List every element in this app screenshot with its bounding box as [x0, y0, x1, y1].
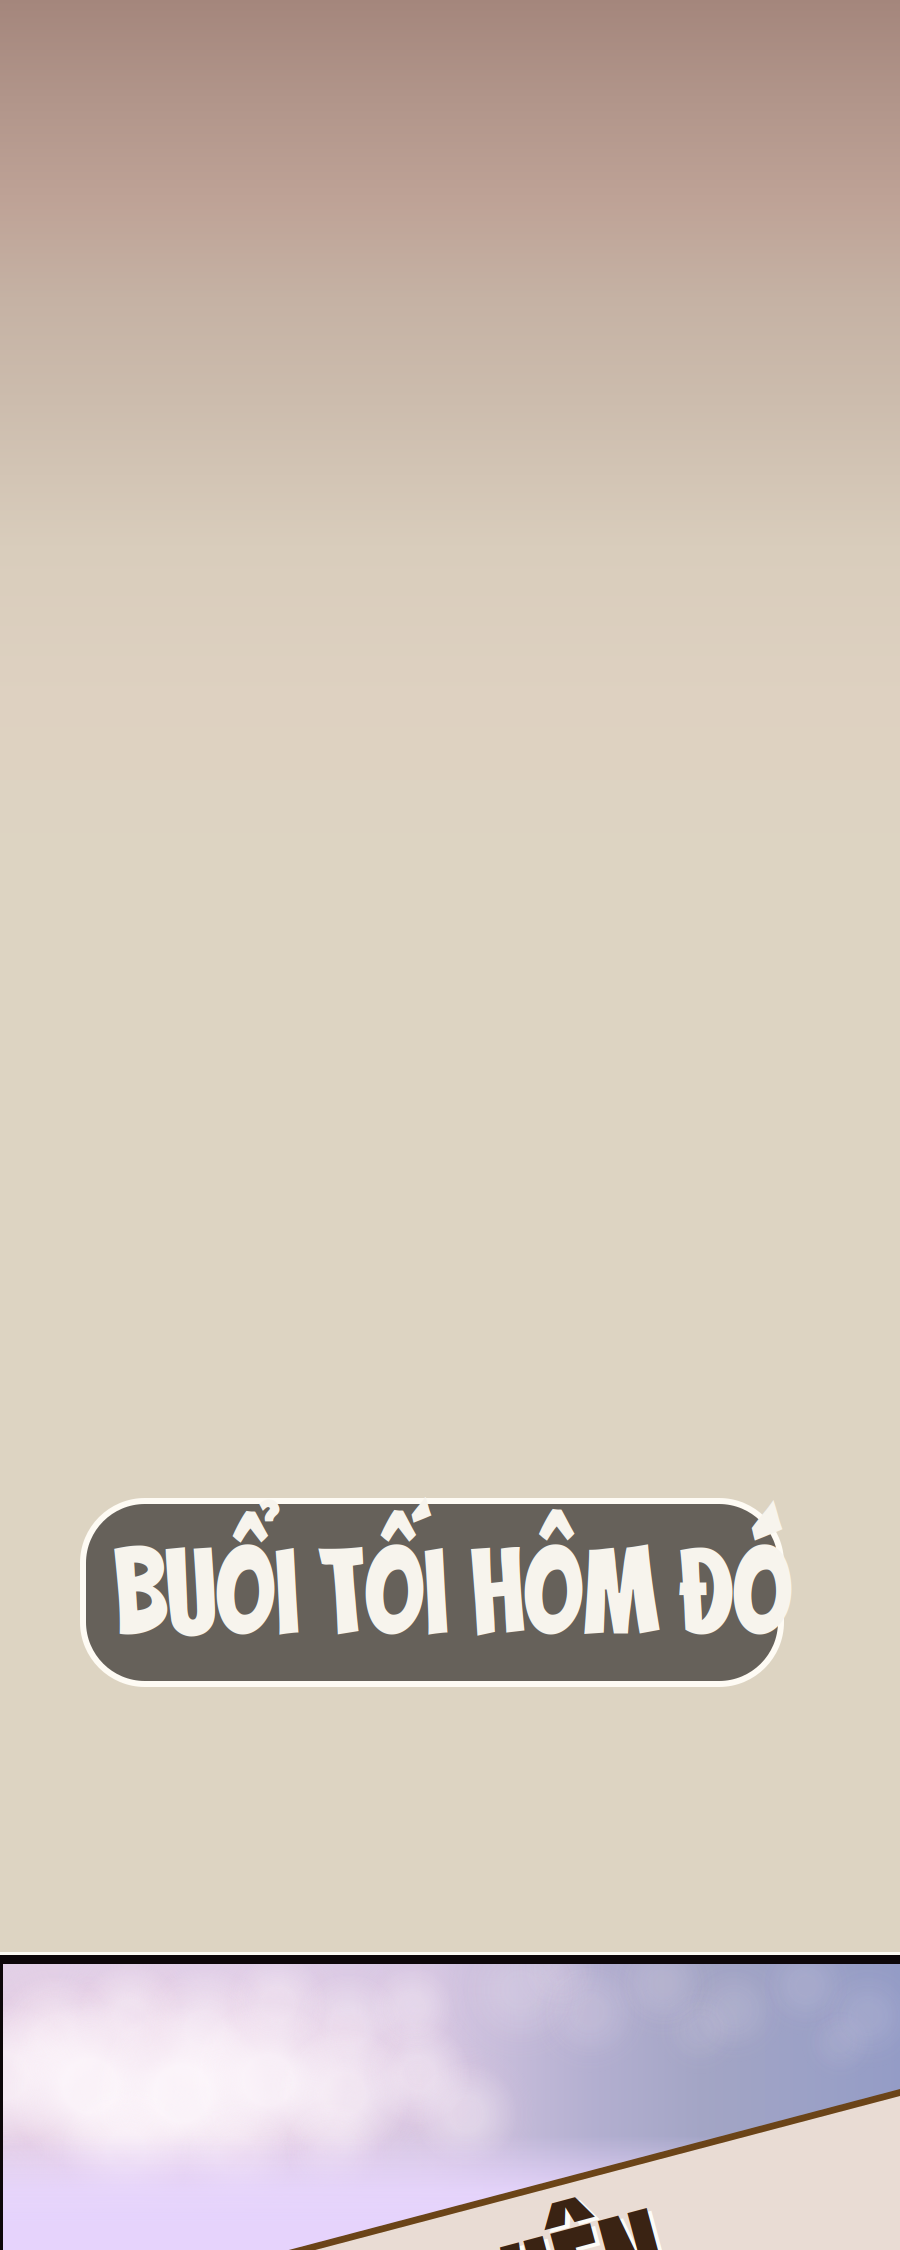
button[interactable]: BUỔI TỐI HÔM ĐÓ: [101, 1501, 799, 1684]
staticText: VIÊN: [476, 2192, 668, 2250]
staticText: VIÊN: [480, 2196, 672, 2250]
staticText: BUỔI TỐI HÔM ĐÓ: [93, 1529, 770, 1656]
